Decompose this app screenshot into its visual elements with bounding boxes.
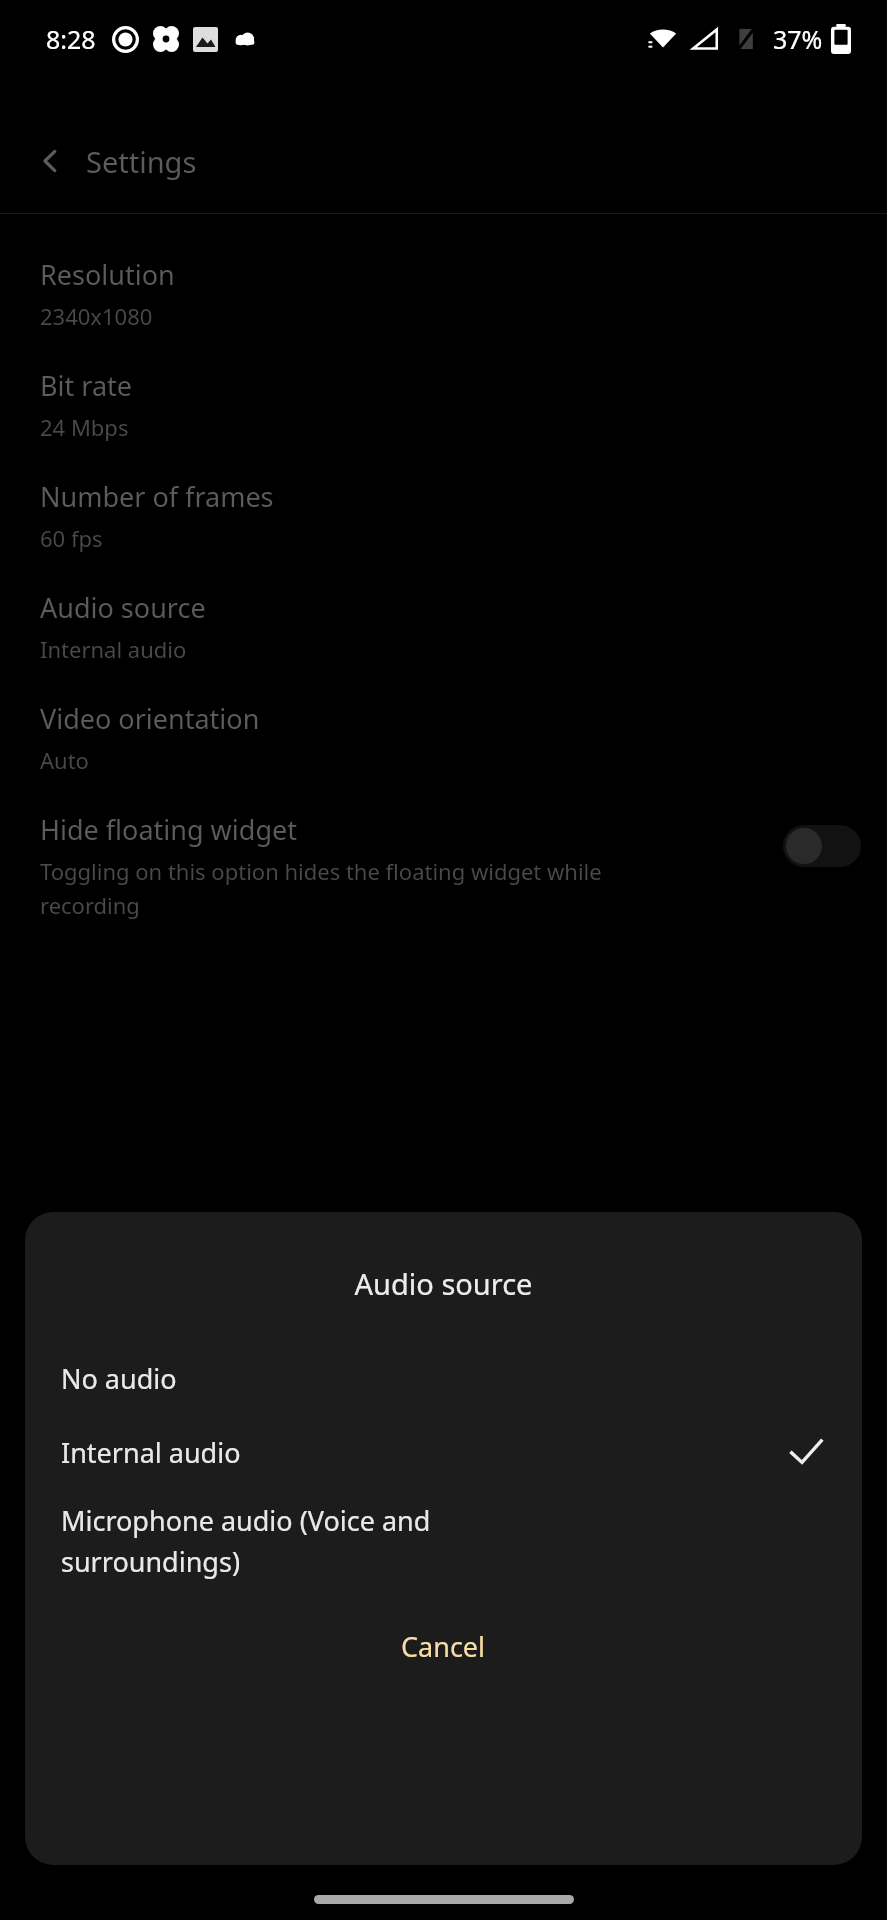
button[interactable]: Cancel: [25, 1608, 862, 1684]
staticText: Internal audio: [61, 1434, 491, 1471]
button[interactable]: No audio: [25, 1360, 862, 1397]
staticText: Resolution: [40, 256, 175, 293]
staticText: Settings: [86, 142, 197, 181]
staticText: 8:28: [46, 22, 96, 56]
staticText: Video orientation: [40, 700, 260, 737]
staticText: 37%: [773, 22, 823, 56]
staticText: Hide floating widget: [40, 811, 297, 848]
button[interactable]: Hide floating widget: [0, 811, 887, 920]
button[interactable]: Bit rate: [0, 367, 887, 478]
staticText: Cancel: [401, 1628, 486, 1665]
button[interactable]: Internal audio: [25, 1432, 862, 1472]
button[interactable]: Microphone audio (Voice and surroundings…: [25, 1502, 862, 1580]
staticText: 60 fps: [40, 523, 103, 553]
staticText: 2340x1080: [40, 301, 153, 331]
staticText: No audio: [61, 1360, 491, 1397]
staticText: 24 Mbps: [40, 412, 129, 442]
button[interactable]: Number of frames: [0, 478, 887, 589]
staticText: Auto: [40, 745, 89, 775]
staticText: Audio source: [25, 1264, 862, 1303]
staticText: Microphone audio (Voice and surroundings…: [61, 1502, 491, 1580]
button[interactable]: Back: [22, 133, 78, 189]
staticText: Bit rate: [40, 367, 133, 404]
button[interactable]: Video orientation: [0, 700, 887, 811]
button[interactable]: Resolution: [0, 256, 887, 367]
staticText: Audio source: [40, 589, 206, 626]
staticText: Toggling on this option hides the floati…: [40, 856, 640, 920]
staticText: Number of frames: [40, 478, 274, 515]
button[interactable]: Audio source: [0, 589, 887, 700]
button[interactable]: Hide floating widget toggle: [783, 825, 861, 867]
staticText: Internal audio: [40, 634, 187, 664]
